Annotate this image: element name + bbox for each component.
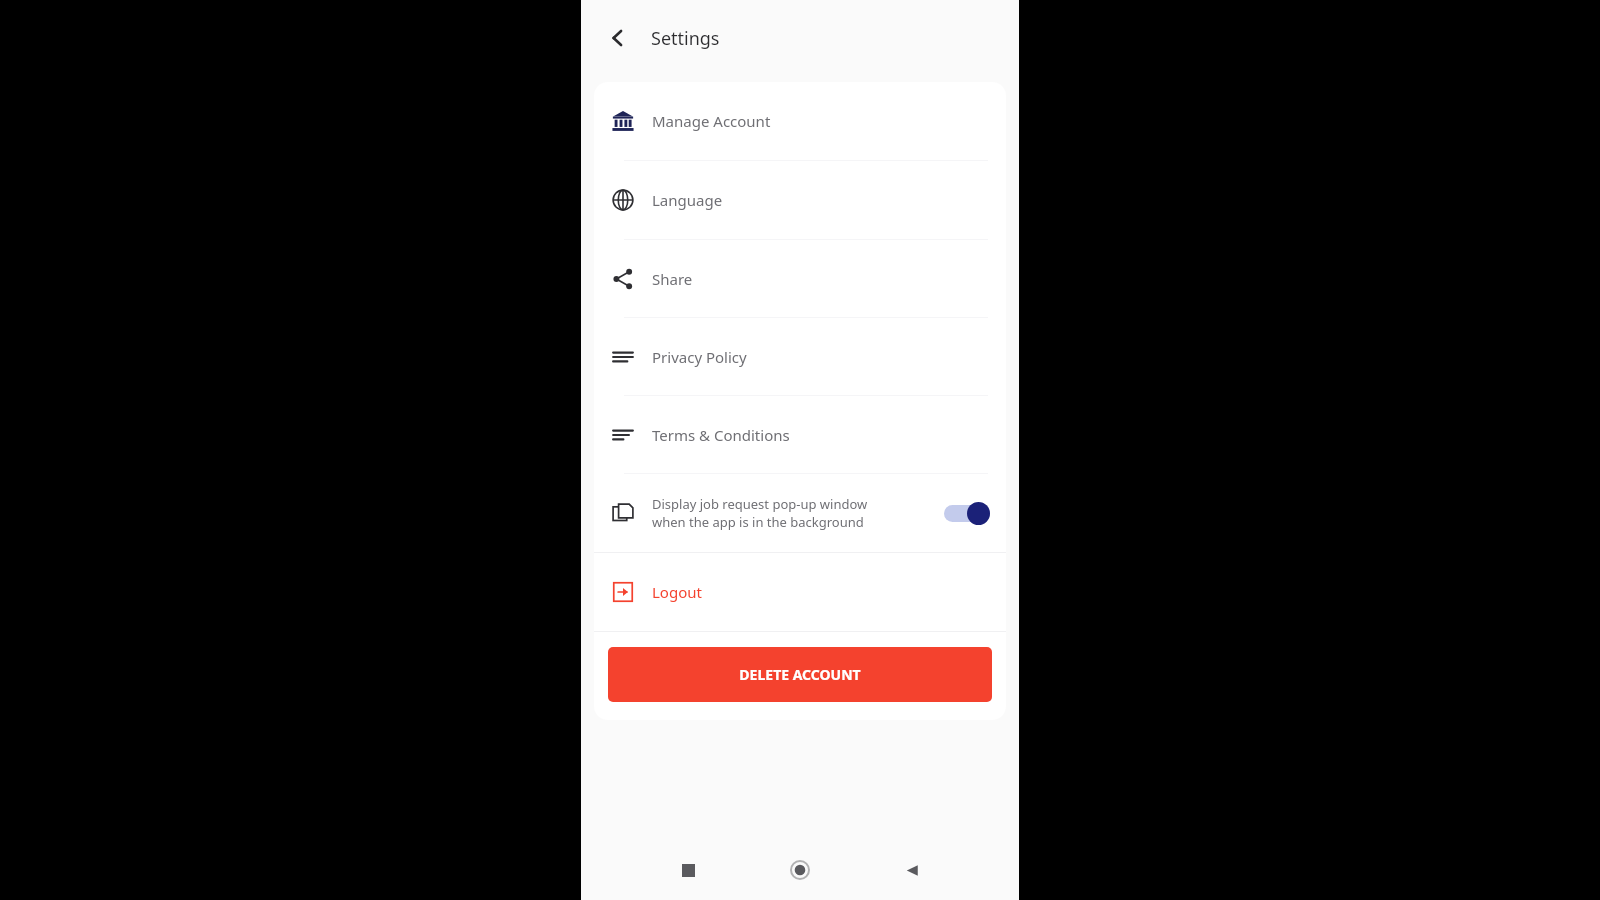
button[interactable]: Terms & Conditions bbox=[594, 396, 1006, 473]
staticText: Manage Account bbox=[652, 111, 771, 131]
button[interactable]: Back bbox=[895, 853, 929, 887]
button[interactable]: Display job request pop-up toggle bbox=[944, 500, 990, 526]
button[interactable]: Language bbox=[594, 161, 1006, 239]
button[interactable]: Recent apps bbox=[671, 853, 705, 887]
staticText: Logout bbox=[652, 582, 702, 602]
button[interactable]: Privacy Policy bbox=[594, 318, 1006, 395]
button[interactable]: Manage Account bbox=[594, 82, 1006, 160]
staticText: Language bbox=[652, 190, 723, 210]
staticText: when the app is in the background bbox=[652, 513, 864, 531]
staticText: Settings bbox=[651, 26, 720, 51]
staticText: Display job request pop-up window bbox=[652, 495, 868, 513]
button[interactable]: Home bbox=[783, 853, 817, 887]
button[interactable]: Back bbox=[595, 15, 641, 61]
button[interactable]: Logout bbox=[594, 553, 1006, 631]
staticText: Share bbox=[652, 269, 693, 289]
button[interactable]: DELETE ACCOUNT bbox=[608, 647, 992, 702]
staticText: DELETE ACCOUNT bbox=[739, 665, 861, 684]
button[interactable]: Share bbox=[594, 240, 1006, 317]
button[interactable]: Display job request pop-up window bbox=[594, 474, 1006, 552]
staticText: Terms & Conditions bbox=[652, 425, 790, 445]
staticText: Privacy Policy bbox=[652, 347, 747, 367]
